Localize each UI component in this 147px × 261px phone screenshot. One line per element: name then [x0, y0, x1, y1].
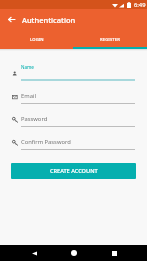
button[interactable]: Home	[68, 247, 80, 259]
staticText: Password	[21, 115, 48, 123]
button[interactable]: CREATE ACCOUNT	[11, 163, 136, 179]
staticText: CREATE ACCOUNT	[50, 167, 98, 175]
staticText: REGISTER	[100, 37, 120, 43]
staticText: Name	[21, 64, 34, 70]
staticText: LOGIN	[30, 37, 44, 43]
staticText: Authentication	[22, 15, 76, 25]
button[interactable]: LOGIN	[0, 31, 73, 49]
staticText: 6:49	[134, 1, 146, 9]
button[interactable]: Recents	[108, 247, 120, 259]
button[interactable]: Back	[28, 247, 40, 259]
button[interactable]: Back	[0, 10, 20, 30]
staticText: Confirm Password	[21, 138, 71, 146]
staticText: Email	[21, 92, 36, 100]
button[interactable]: REGISTER	[73, 31, 147, 49]
